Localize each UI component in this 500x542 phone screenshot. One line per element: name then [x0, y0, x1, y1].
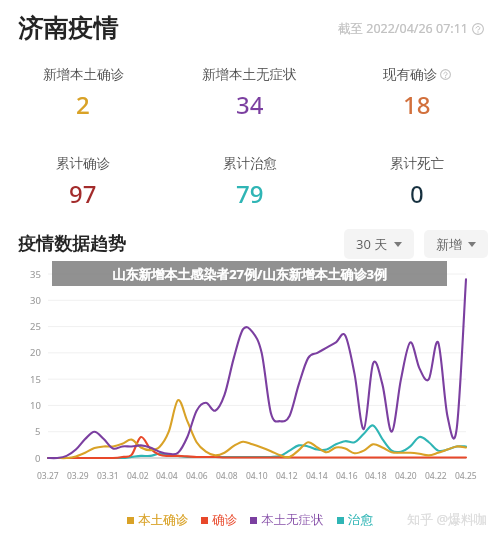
staticText: 山东新增本土感染者27例/山东新增本土确诊3例 — [112, 265, 387, 283]
staticText: 03.29 — [67, 470, 89, 482]
staticText: 04.10 — [246, 470, 268, 482]
staticText: 30 天 — [356, 235, 388, 253]
staticText: 04.08 — [216, 470, 238, 482]
staticText: 知乎 @爆料咖 — [407, 510, 488, 528]
staticText: 18 — [403, 88, 431, 121]
staticText: 新增 — [436, 236, 462, 252]
staticText: 97 — [69, 177, 97, 210]
staticText: 截至 2022/04/26 07:11 — [338, 20, 468, 37]
staticText: 04.16 — [336, 470, 358, 482]
staticText: 04.12 — [276, 470, 298, 482]
staticText: 35 — [30, 268, 41, 281]
staticText: 累计确诊 — [56, 155, 110, 172]
button[interactable]: 本土无症状 — [248, 510, 326, 530]
staticText: 04.04 — [156, 470, 178, 482]
staticText: 0 — [35, 452, 41, 465]
staticText: 疫情数据趋势 — [18, 233, 126, 256]
staticText: 03.27 — [37, 470, 59, 482]
staticText: 04.14 — [306, 470, 328, 482]
staticText: 累计治愈 — [223, 155, 277, 172]
staticText: 本土确诊 — [138, 512, 188, 528]
button[interactable]: 累计治愈 — [166, 153, 333, 212]
button[interactable]: 治愈 — [335, 510, 375, 530]
staticText: 25 — [30, 320, 41, 333]
staticText: 04.18 — [365, 470, 387, 482]
button[interactable]: 累计确诊 — [0, 153, 166, 212]
button[interactable]: 本土确诊 — [125, 510, 190, 530]
staticText: 确诊 — [212, 512, 237, 528]
button[interactable]: 累计死亡 — [333, 153, 500, 212]
staticText: 04.02 — [127, 470, 149, 482]
button[interactable]: 截至 2022/04/26 07:11 — [334, 16, 488, 41]
staticText: 04.25 — [455, 470, 477, 482]
staticText: 5 — [35, 425, 41, 438]
staticText: 新增本土无症状 — [202, 66, 297, 83]
staticText: 15 — [30, 373, 41, 386]
staticText: 30 — [30, 294, 41, 307]
button[interactable]: 新增本土无症状 — [166, 64, 333, 123]
staticText: 04.06 — [186, 470, 208, 482]
staticText: 2 — [76, 88, 90, 121]
button[interactable]: 新增本土确诊 — [0, 64, 166, 123]
staticText: 新增本土确诊 — [43, 66, 124, 83]
other: 说明 — [440, 69, 451, 80]
staticText: 03.31 — [97, 470, 119, 482]
staticText: 20 — [30, 346, 41, 359]
staticText: 04.22 — [425, 470, 447, 482]
staticText: 济南疫情 — [18, 13, 118, 44]
staticText: 现有确诊 — [383, 66, 437, 83]
staticText: 治愈 — [348, 512, 373, 528]
staticText: 本土无症状 — [261, 512, 324, 528]
button[interactable]: 确诊 — [199, 510, 239, 530]
staticText: 34 — [236, 88, 264, 121]
other: 说明 — [472, 23, 484, 35]
staticText: 累计死亡 — [390, 155, 444, 172]
staticText: 79 — [236, 177, 264, 210]
button[interactable]: 30 天 — [344, 229, 414, 259]
staticText: 0 — [410, 177, 424, 210]
button[interactable]: 新增 — [424, 230, 488, 258]
staticText: 10 — [30, 399, 41, 412]
staticText: 04.20 — [395, 470, 417, 482]
button[interactable]: 现有确诊 — [333, 64, 500, 123]
